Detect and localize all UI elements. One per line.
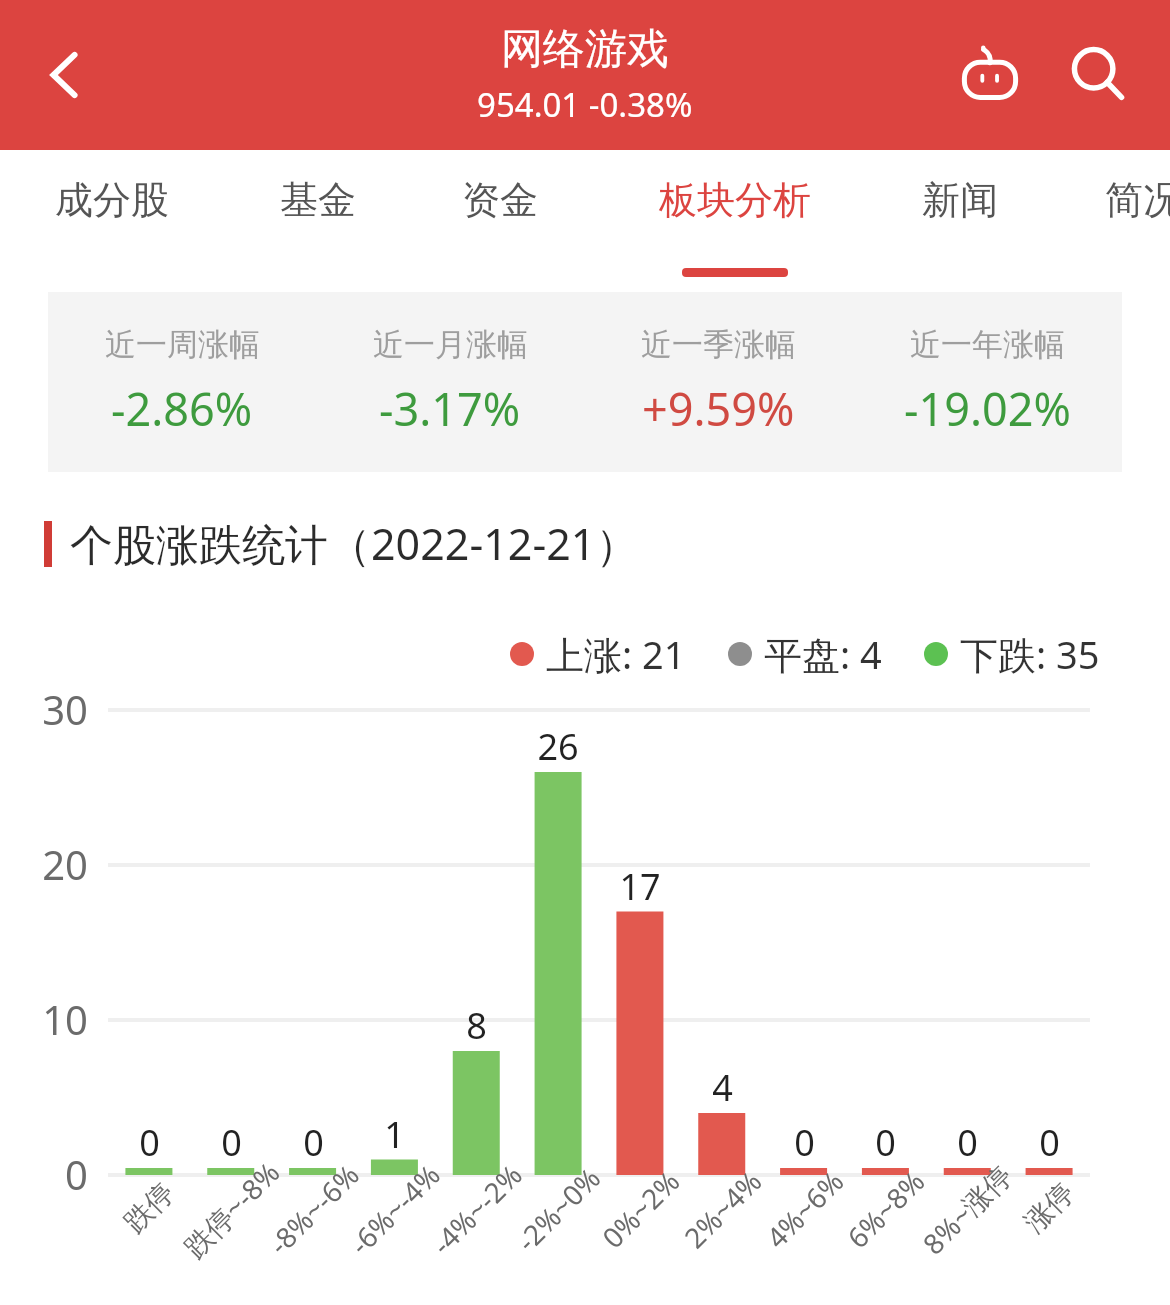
staticText: -4%~-2% — [423, 1156, 530, 1262]
staticText: -2.86% — [111, 378, 253, 439]
staticText: 简况 — [1105, 176, 1170, 224]
staticText: 20 — [42, 837, 88, 891]
staticText: 2%~4% — [675, 1162, 769, 1256]
staticText: 0 — [221, 1118, 242, 1167]
staticText: 954.01 -0.38% — [477, 82, 693, 127]
button[interactable]: 近一季涨幅 — [584, 292, 853, 472]
staticText: -8%~-6% — [260, 1156, 367, 1262]
staticText: -6%~-4% — [341, 1156, 448, 1262]
staticText: 8%~涨停 — [914, 1156, 1020, 1262]
staticText: 0 — [303, 1118, 324, 1167]
staticText: 近一季涨幅 — [641, 325, 796, 364]
button[interactable]: 近一周涨幅 — [48, 292, 316, 472]
staticText: 基金 — [280, 176, 356, 224]
staticText: 0%~2% — [593, 1162, 687, 1256]
staticText: 0 — [1039, 1118, 1060, 1167]
staticText: 17 — [619, 862, 661, 911]
staticText: 0 — [139, 1118, 160, 1167]
staticText: 0 — [794, 1118, 815, 1167]
staticText: 4%~6% — [757, 1162, 851, 1256]
staticText: 近一周涨幅 — [105, 325, 260, 364]
staticText: 30 — [42, 682, 88, 736]
button[interactable]: 新闻 — [908, 160, 1012, 240]
staticText: 26 — [537, 722, 579, 771]
button[interactable]: 基金 — [266, 160, 370, 240]
staticText: 跌停 — [117, 1175, 181, 1240]
staticText: 下跌: 35 — [960, 628, 1100, 680]
button[interactable]: Search — [1050, 27, 1146, 123]
staticText: 0 — [957, 1118, 978, 1167]
staticText: 近一年涨幅 — [910, 325, 1065, 364]
staticText: 0 — [875, 1118, 896, 1167]
staticText: 0 — [65, 1147, 88, 1201]
staticText: -3.17% — [379, 378, 521, 439]
staticText: 平盘: 4 — [764, 628, 882, 680]
staticText: 8 — [466, 1001, 487, 1050]
staticText: 6%~8% — [838, 1162, 932, 1256]
button[interactable]: 近一月涨幅 — [316, 292, 584, 472]
staticText: 资金 — [462, 176, 538, 224]
button[interactable]: 简况 — [1091, 160, 1170, 240]
staticText: 10 — [42, 992, 88, 1046]
button[interactable]: 近一年涨幅 — [853, 292, 1122, 472]
button[interactable]: 成分股 — [41, 160, 183, 240]
staticText: 1 — [384, 1110, 405, 1159]
staticText: -2%~0% — [508, 1159, 608, 1259]
staticText: 网络游戏 — [501, 23, 669, 76]
button[interactable]: 板块分析 — [645, 160, 825, 240]
button[interactable]: Back — [18, 29, 110, 121]
staticText: +9.59% — [642, 378, 795, 439]
staticText: 新闻 — [922, 176, 998, 224]
staticText: 个股涨跌统计（2022-12-21） — [70, 514, 639, 573]
staticText: 近一月涨幅 — [373, 325, 528, 364]
staticText: 跌停~-8% — [175, 1153, 288, 1265]
button[interactable]: 资金 — [448, 160, 552, 240]
staticText: 4 — [712, 1063, 733, 1112]
staticText: 成分股 — [55, 176, 169, 224]
staticText: 上涨: 21 — [546, 628, 686, 680]
staticText: -19.02% — [904, 378, 1071, 439]
staticText: 涨停 — [1017, 1175, 1081, 1240]
button[interactable]: Assistant — [942, 27, 1038, 123]
staticText: 板块分析 — [659, 176, 811, 224]
